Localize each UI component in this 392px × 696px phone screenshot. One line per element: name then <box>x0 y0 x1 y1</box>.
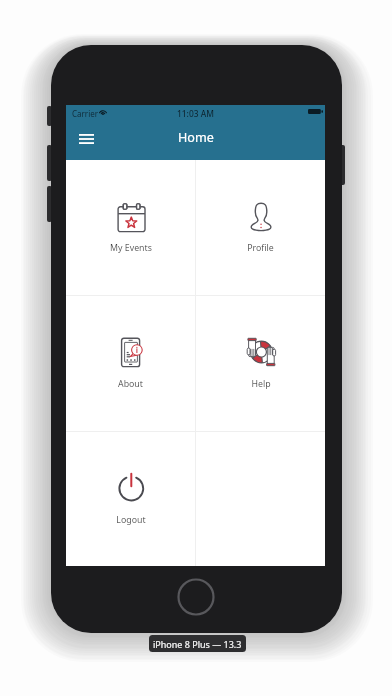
staticText: Carrier <box>72 108 99 119</box>
button[interactable]: Logout <box>66 432 195 566</box>
staticText: Profile <box>247 242 274 254</box>
staticText: My Events <box>110 242 152 254</box>
button[interactable]: Home button <box>177 578 215 616</box>
staticText: iPhone 8 Plus — 13.3 <box>153 638 242 650</box>
button[interactable]: My Events <box>66 160 195 295</box>
button[interactable]: Open navigation menu <box>68 125 104 160</box>
button[interactable]: Profile <box>196 160 325 295</box>
staticText: About <box>118 378 143 390</box>
staticText: 11:03 AM <box>177 108 214 119</box>
button[interactable]: Help <box>196 296 325 431</box>
staticText: Help <box>251 378 271 390</box>
button[interactable]: About <box>66 296 195 431</box>
staticText: Logout <box>116 514 146 526</box>
staticText: Home <box>178 129 214 146</box>
